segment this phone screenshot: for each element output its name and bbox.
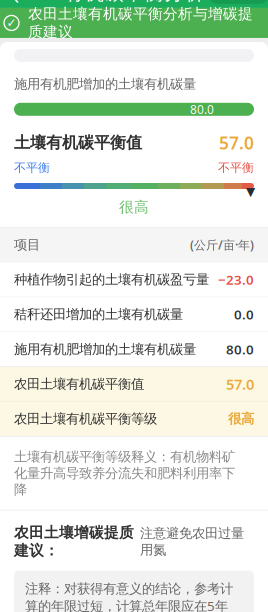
staticText: 不平衡	[14, 160, 50, 175]
staticText: 有机碳平衡分析	[64, 0, 204, 5]
staticText: 施用有机肥增加的土壤有机碳量	[14, 341, 196, 357]
staticText: 80.0	[226, 340, 254, 358]
staticText: 0.0	[234, 306, 254, 323]
staticText: 57.0	[219, 131, 254, 154]
button[interactable]: More	[207, 0, 239, 4]
staticText: 秸秆还田增加的土壤有机碳量	[14, 306, 183, 323]
staticText: 农田土壤有机碳平衡分析与增碳提质建议	[28, 5, 253, 41]
staticText: 57.0	[226, 374, 254, 394]
button[interactable]: Back	[0, 0, 32, 8]
staticText: 注释：对获得有意义的结论，参考计算的年限过短，计算总年限应在5年以上。	[25, 581, 233, 612]
staticText: (公斤/亩·年)	[190, 237, 254, 253]
staticText: 很高	[228, 411, 254, 427]
staticText: ✓	[6, 16, 16, 30]
staticText: 农田土壤有机碳平衡等级	[14, 411, 157, 427]
staticText: 农田土壤有机碳平衡值	[14, 376, 144, 392]
staticText: 土壤有机碳平衡值	[14, 133, 142, 153]
staticText: 注意避免农田过量用氮	[140, 525, 244, 558]
staticText: 80.0	[190, 101, 214, 117]
staticText: −23.0	[218, 271, 254, 288]
button[interactable]: Close	[240, 0, 268, 4]
staticText: 很高	[119, 198, 149, 216]
staticText: 项目	[14, 237, 40, 253]
staticText: ▼	[246, 185, 255, 198]
staticText: 施用有机肥增加的土壤有机碳量	[14, 76, 196, 92]
staticText: ‹	[11, 0, 19, 14]
staticText: 种植作物引起的土壤有机碳盈亏量	[14, 271, 209, 288]
staticText: 土壤有机碳平衡等级释义：有机物料矿化量升高导致养分流失和肥料利用率下降	[14, 449, 235, 498]
staticText: 农田土壤增碳提质建议：	[14, 524, 134, 560]
staticText: 不平衡	[218, 160, 254, 175]
